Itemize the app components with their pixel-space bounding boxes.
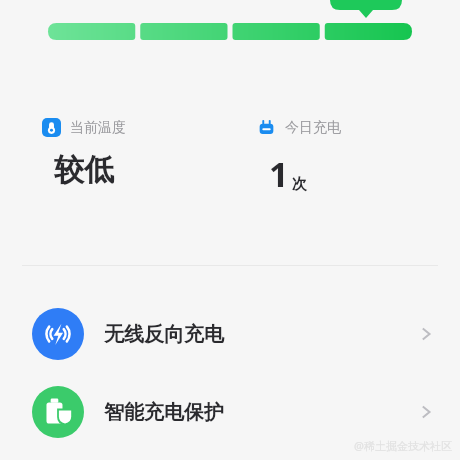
staticText: 1 — [269, 151, 289, 197]
other: 无线反向充电 — [32, 308, 84, 360]
staticText: 较低 — [54, 151, 114, 189]
staticText: 当前温度 — [70, 119, 126, 137]
staticText: 智能充电保护 — [104, 400, 224, 425]
staticText: 今日充电 — [285, 119, 341, 137]
staticText: @稀土掘金技术社区 — [354, 438, 452, 453]
staticText: 次 — [292, 175, 307, 194]
button[interactable]: 智能充电保护 — [0, 384, 460, 440]
staticText: 无线反向充电 — [104, 322, 224, 347]
button[interactable]: 无线反向充电 — [0, 306, 460, 362]
other: 智能充电保护 — [32, 386, 84, 438]
